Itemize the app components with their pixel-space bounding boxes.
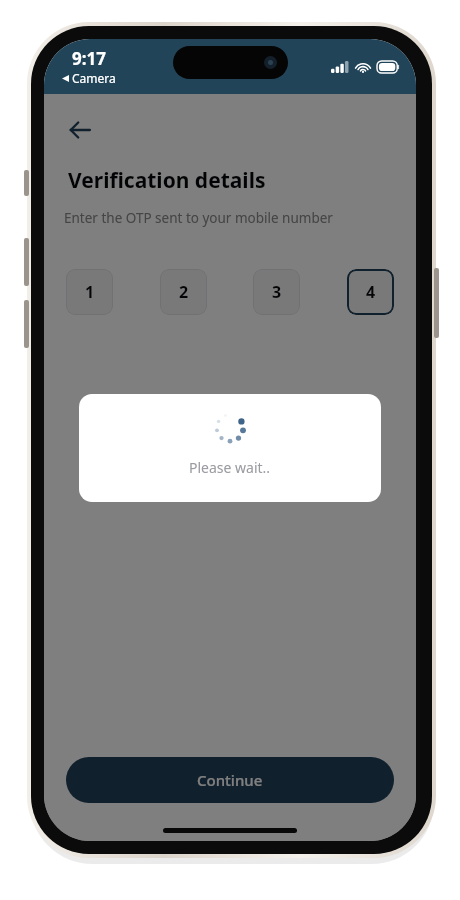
- staticText: Continue: [197, 770, 263, 790]
- staticText: 2: [179, 281, 189, 303]
- button[interactable]: 3: [253, 269, 300, 315]
- button[interactable]: Back: [58, 108, 102, 152]
- button[interactable]: 1: [66, 269, 113, 315]
- staticText: Verification details: [68, 166, 266, 195]
- staticText: 1: [85, 281, 95, 303]
- staticText: Enter the OTP sent to your mobile number: [64, 209, 333, 227]
- button[interactable]: 4: [347, 269, 394, 315]
- staticText: Please wait..: [189, 458, 271, 477]
- staticText: 9:17: [72, 47, 106, 70]
- button[interactable]: Continue: [66, 757, 394, 803]
- staticText: 4: [366, 281, 376, 303]
- staticText: 3: [272, 281, 282, 303]
- button[interactable]: 2: [160, 269, 207, 315]
- staticText: Camera: [72, 70, 116, 86]
